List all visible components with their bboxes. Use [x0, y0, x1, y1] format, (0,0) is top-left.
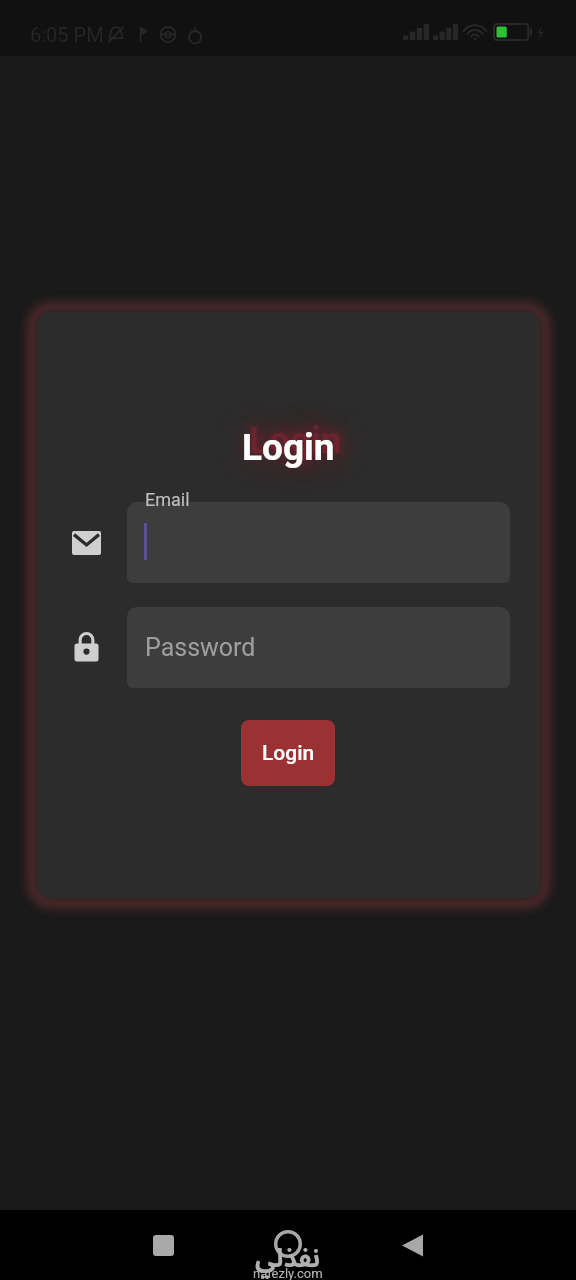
staticText: nafezly.com — [253, 1266, 323, 1280]
staticText: Login — [247, 422, 340, 465]
staticText: نفذلي — [255, 1231, 321, 1280]
button[interactable]: Back — [388, 1221, 436, 1269]
button[interactable] — [127, 502, 510, 583]
button[interactable]: Password — [127, 607, 510, 688]
button[interactable]: Recents — [139, 1221, 187, 1269]
button[interactable]: Login — [241, 720, 335, 786]
staticText: 6:05 PM — [30, 23, 104, 46]
staticText: Login — [242, 426, 335, 469]
button[interactable]: Home — [264, 1220, 312, 1268]
staticText: Password — [145, 633, 256, 662]
button[interactable]: Password — [66, 627, 106, 667]
button[interactable]: Email — [66, 523, 106, 563]
staticText: Login — [262, 741, 315, 766]
staticText: Email — [145, 489, 190, 510]
staticText: Login — [249, 419, 342, 462]
